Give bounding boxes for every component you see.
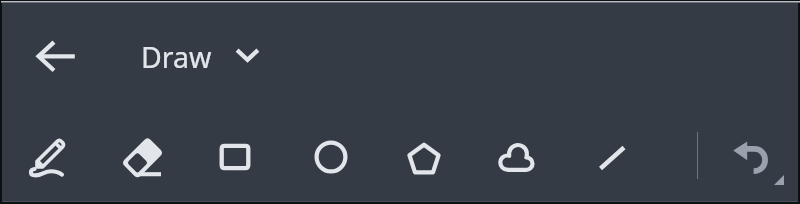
- button[interactable]: Eraser: [118, 133, 166, 181]
- button[interactable]: Pen: [25, 133, 73, 181]
- button[interactable]: Undo: [729, 133, 777, 181]
- button[interactable]: Cloud: [495, 133, 543, 181]
- button[interactable]: Circle: [307, 133, 355, 181]
- staticText: Draw: [141, 38, 212, 72]
- button[interactable]: Back: [31, 33, 79, 81]
- button[interactable]: Rectangle: [211, 133, 259, 181]
- button[interactable]: Line: [588, 133, 636, 181]
- button[interactable]: Draw: [141, 38, 260, 72]
- button[interactable]: Pentagon: [400, 133, 448, 181]
